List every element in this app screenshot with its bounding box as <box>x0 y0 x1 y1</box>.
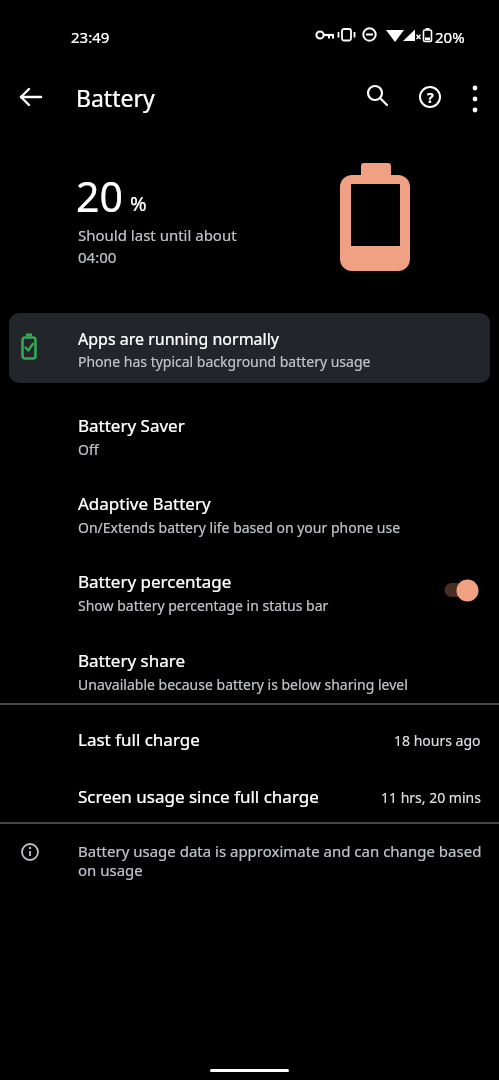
staticText: Battery percentage <box>78 570 232 593</box>
staticText: Off <box>78 440 99 459</box>
staticText: Adaptive Battery <box>78 492 211 515</box>
button[interactable]: Screen usage since full charge <box>0 773 499 823</box>
button[interactable]: Adaptive Battery <box>0 482 499 558</box>
staticText: Battery share <box>78 649 186 672</box>
staticText: 20 <box>76 168 123 224</box>
button[interactable]: Apps are running normally <box>9 313 490 383</box>
button[interactable]: Battery Saver <box>0 404 499 480</box>
button[interactable]: ? <box>413 80 447 114</box>
staticText: 18 hours ago <box>394 731 481 750</box>
staticText: ? <box>427 88 434 107</box>
button[interactable]: Battery share <box>0 639 499 715</box>
staticText: Battery usage data is approximate and ca… <box>78 841 482 880</box>
staticText: Apps are running normally <box>78 328 279 350</box>
button[interactable]: Battery percentage <box>0 560 499 636</box>
staticText: Phone has typical background battery usa… <box>78 352 371 371</box>
staticText: Screen usage since full charge <box>78 785 319 808</box>
button[interactable]: Last full charge <box>0 716 499 766</box>
staticText: Show battery percentage in status bar <box>78 596 329 615</box>
staticText: 20% <box>435 27 465 47</box>
staticText: 23:49 <box>71 27 110 47</box>
staticText: 11 hrs, 20 mins <box>381 788 481 807</box>
staticText: % <box>130 190 147 217</box>
staticText: Last full charge <box>78 728 200 751</box>
staticText: On/Extends battery life based on your ph… <box>78 518 401 537</box>
button[interactable] <box>361 80 393 112</box>
staticText: Battery <box>76 82 155 113</box>
button[interactable] <box>14 80 48 114</box>
staticText: Should last until about 04:00 <box>78 225 237 268</box>
staticText: Battery Saver <box>78 414 185 437</box>
button[interactable] <box>459 80 491 114</box>
staticText: Unavailable because battery is below sha… <box>78 675 408 694</box>
